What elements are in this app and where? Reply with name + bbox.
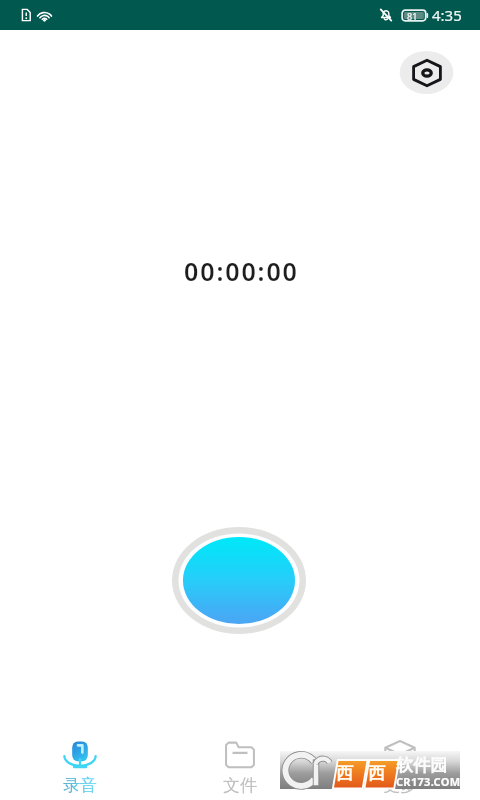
staticText: 西 [336, 763, 353, 784]
staticText: 文件 [223, 775, 257, 796]
staticText: 西 [368, 763, 385, 784]
button[interactable]: 文件 [160, 736, 320, 796]
staticText: 4:35 [432, 5, 462, 25]
staticText: 00:00:00 [184, 254, 299, 288]
staticText: CR173.COM [396, 774, 461, 789]
button[interactable]: Start recording [171, 526, 307, 635]
button[interactable]: 录音 [0, 736, 160, 796]
staticText: 更多 [383, 775, 417, 796]
staticText: 软件园 [396, 755, 447, 776]
button[interactable]: 更多 [320, 736, 480, 796]
button[interactable]: Settings [398, 49, 455, 96]
staticText: 81 [407, 10, 418, 22]
staticText: 录音 [63, 775, 97, 796]
